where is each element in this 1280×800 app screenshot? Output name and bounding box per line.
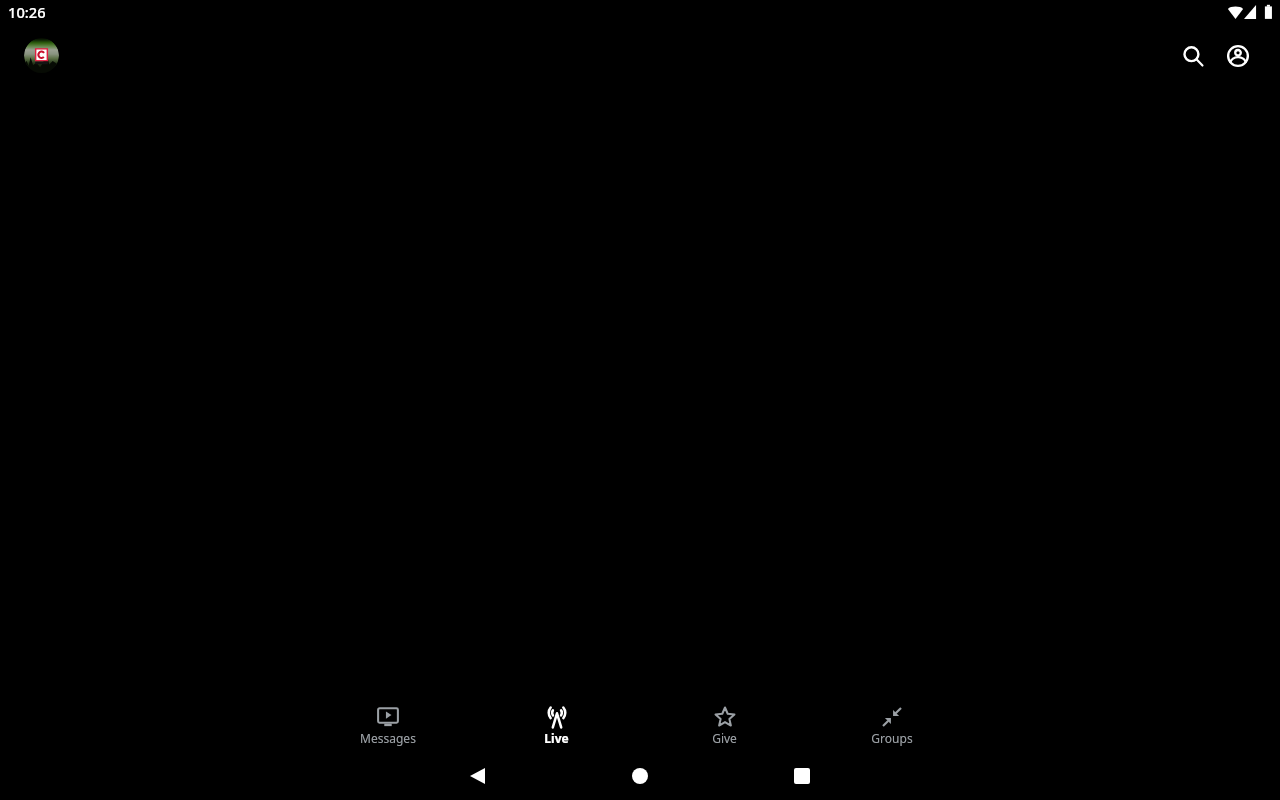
button[interactable]: Search [1177, 40, 1209, 72]
button[interactable]: Live [472, 700, 640, 752]
button[interactable]: Groups [808, 700, 976, 752]
staticText: Groups [871, 730, 913, 746]
button[interactable]: Give [640, 700, 808, 752]
button[interactable]: Account [1222, 40, 1254, 72]
button[interactable]: Back [461, 760, 493, 792]
button[interactable]: Messages [304, 700, 472, 752]
button[interactable]: Recents [786, 760, 818, 792]
staticText: Give [712, 730, 737, 746]
staticText: Live [544, 730, 569, 746]
staticText: Messages [360, 730, 416, 746]
staticText: 10:26 [8, 2, 46, 22]
button[interactable]: Home [624, 760, 656, 792]
button[interactable]: Profile [24, 38, 59, 73]
